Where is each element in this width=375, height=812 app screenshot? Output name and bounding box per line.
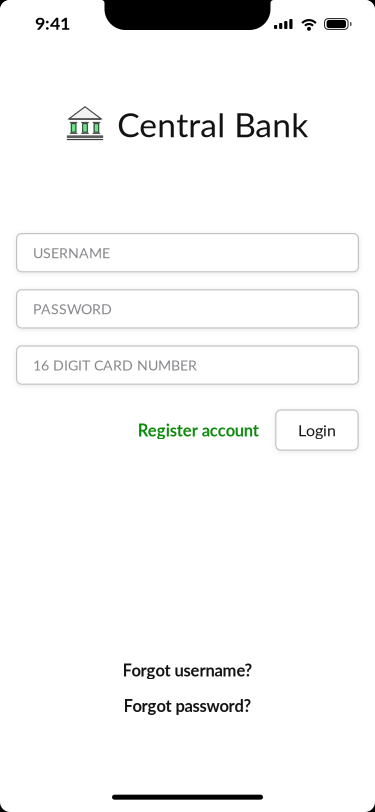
button[interactable]: Forgot password?: [107, 693, 267, 717]
staticText: USERNAME: [33, 244, 110, 261]
staticText: Forgot password?: [123, 696, 251, 715]
staticText: 16 DIGIT CARD NUMBER: [33, 357, 197, 374]
button[interactable]: Login: [275, 409, 359, 451]
staticText: Login: [298, 420, 336, 440]
staticText: Register account: [138, 420, 259, 440]
staticText: Central Bank: [117, 104, 308, 144]
staticText: PASSWORD: [33, 300, 112, 317]
staticText: 9:41: [35, 12, 70, 33]
staticText: Forgot username?: [122, 660, 252, 680]
button[interactable]: USERNAME: [16, 233, 359, 272]
button[interactable]: Register account: [138, 409, 259, 451]
button[interactable]: 16 DIGIT CARD NUMBER: [16, 345, 359, 385]
button[interactable]: PASSWORD: [16, 289, 359, 329]
button[interactable]: Forgot username?: [107, 658, 267, 682]
